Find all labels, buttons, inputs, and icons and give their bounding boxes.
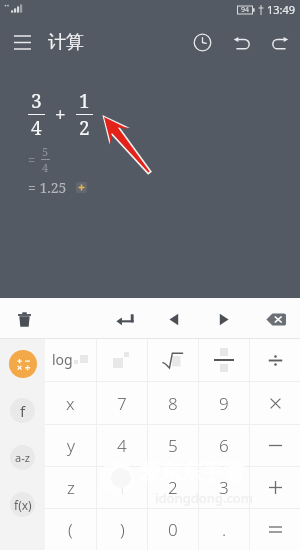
button[interactable]: a-z — [0, 434, 45, 481]
button[interactable]: History — [188, 28, 216, 56]
staticText: = — [28, 151, 36, 169]
staticText: 9 — [219, 392, 229, 415]
button[interactable]: ( — [45, 509, 96, 550]
staticText: y — [67, 434, 75, 457]
staticText: z — [67, 476, 75, 499]
staticText: = 1.25 — [28, 178, 67, 197]
button[interactable]: Enter — [107, 301, 143, 337]
staticText: idongdong.com — [155, 489, 254, 507]
button[interactable]: minus — [250, 425, 300, 466]
button[interactable]: 4 — [97, 425, 147, 466]
staticText: 94 — [241, 5, 250, 15]
button[interactable]: square root — [148, 339, 198, 381]
button[interactable]: Menu — [6, 26, 38, 58]
button[interactable]: fraction — [199, 339, 249, 381]
button[interactable]: x — [45, 382, 96, 424]
staticText: 5 — [168, 434, 178, 457]
button[interactable]: 7 — [97, 382, 147, 424]
button[interactable]: Undo — [228, 28, 256, 56]
staticText: 7 — [117, 392, 127, 415]
staticText: 0 — [168, 518, 178, 541]
button[interactable]: Redo — [266, 28, 294, 56]
staticText: 4 — [117, 434, 127, 457]
staticText: 4 — [31, 115, 42, 141]
button[interactable]: power — [97, 339, 147, 381]
staticText: 4 — [42, 160, 49, 175]
button[interactable]: equals — [250, 509, 300, 550]
staticText: . — [222, 518, 227, 541]
button[interactable]: Backspace — [258, 301, 294, 337]
staticText: 2 — [168, 476, 178, 499]
button[interactable]: 9 — [199, 382, 249, 424]
staticText: 8 — [168, 392, 178, 415]
button[interactable]: Move left — [156, 301, 192, 337]
button[interactable]: 0 — [148, 509, 198, 550]
button[interactable]: multiply — [250, 382, 300, 424]
button[interactable]: 8 — [148, 382, 198, 424]
staticText: f(x) — [14, 497, 32, 513]
staticText: 13:49 — [267, 2, 296, 17]
button[interactable]: . — [199, 509, 249, 550]
staticText: 2 — [79, 115, 90, 141]
staticText: 计算 — [48, 31, 84, 54]
button[interactable]: log key — [45, 339, 96, 381]
button[interactable]: y — [45, 425, 96, 466]
staticText: 6 — [219, 434, 229, 457]
button[interactable]: f(x) — [0, 481, 45, 528]
staticText: 1 — [79, 88, 90, 114]
staticText: 3 — [219, 476, 229, 499]
staticText: a-z — [15, 450, 30, 465]
staticText: 1 — [117, 476, 127, 499]
staticText: 3 — [31, 88, 42, 114]
button[interactable]: f — [0, 387, 45, 434]
staticText: f — [20, 401, 26, 421]
button[interactable]: divide — [250, 339, 300, 381]
staticText: x — [66, 392, 75, 415]
button[interactable]: Operators — [0, 340, 45, 387]
button[interactable]: z — [45, 467, 96, 508]
button[interactable]: 6 — [199, 425, 249, 466]
button[interactable]: 5 — [148, 425, 198, 466]
staticText: log — [52, 350, 73, 369]
button[interactable]: 3 — [199, 467, 249, 508]
button[interactable]: 2 — [148, 467, 198, 508]
button[interactable]: Clear — [6, 301, 42, 337]
staticText: + — [55, 102, 66, 128]
button[interactable]: ) — [97, 509, 147, 550]
button[interactable]: Show more — [76, 182, 87, 193]
staticText: ( — [68, 518, 73, 541]
staticText: 5 — [42, 144, 49, 159]
button[interactable]: plus — [250, 467, 300, 508]
button[interactable]: Move right — [206, 301, 242, 337]
staticText: ) — [120, 518, 125, 541]
staticText: 爱东东手游 — [139, 459, 244, 485]
